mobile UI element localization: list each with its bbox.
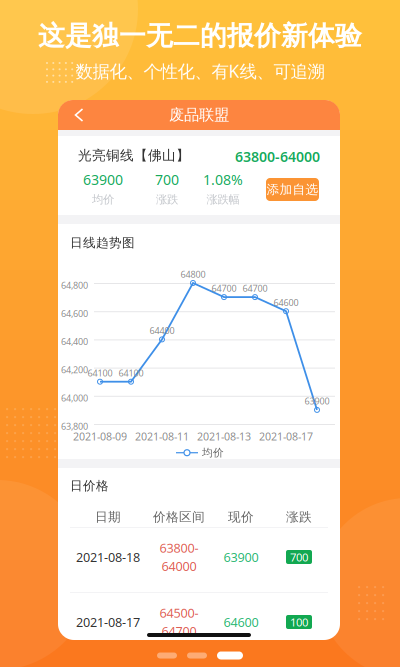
staticText: 63900 [83, 170, 123, 189]
staticText: 64,000 [61, 392, 88, 404]
staticText: 1.08% [203, 170, 243, 189]
staticText: 日线趋势图 [70, 235, 135, 251]
staticText: 64500- [159, 604, 198, 621]
staticText: 2021-08-17 [76, 613, 140, 631]
staticText: 2021-08-13 [197, 429, 251, 443]
staticText: 100 [290, 614, 308, 630]
staticText: 64000 [161, 557, 196, 575]
staticText: 64400 [149, 324, 174, 337]
button[interactable]: 添加自选 [266, 178, 319, 201]
staticText: 63800- [159, 539, 198, 556]
staticText: 64800 [180, 268, 205, 280]
staticText: 均价 [202, 446, 224, 459]
staticText: 63,800 [61, 420, 88, 432]
staticText: 2021-08-17 [259, 429, 313, 443]
staticText: 64700 [211, 282, 236, 294]
staticText: 700 [155, 170, 179, 189]
staticText: 64700 [161, 622, 196, 640]
staticText: 2021-08-09 [73, 429, 127, 443]
staticText: 2021-08-11 [135, 429, 189, 443]
staticText: 64600 [223, 613, 258, 631]
staticText: 64,400 [61, 335, 88, 348]
staticText: 数据化、个性化、有K线、可追溯 [75, 59, 324, 83]
staticText: 63900 [223, 548, 258, 566]
staticText: 日期 [95, 509, 121, 525]
staticText: 64600 [273, 296, 298, 308]
staticText: 添加自选 [266, 181, 318, 197]
staticText: 这是独一无二的报价新体验 [38, 19, 362, 53]
staticText: 光亮铜线【佛山】 [78, 147, 190, 164]
staticText: 2021-08-18 [76, 548, 140, 566]
staticText: 涨跌 [156, 192, 178, 206]
staticText: 涨跌幅 [206, 192, 239, 206]
staticText: 废品联盟 [169, 105, 229, 125]
staticText: 63900 [304, 395, 329, 407]
staticText: 700 [290, 549, 308, 565]
staticText: 日价格 [70, 478, 109, 494]
staticText: 均价 [92, 192, 114, 206]
staticText: 64100 [118, 367, 143, 379]
staticText: 64,800 [61, 279, 88, 291]
staticText: 64100 [87, 367, 112, 379]
staticText: 63800-64000 [235, 147, 320, 166]
button[interactable]: Back [66, 102, 92, 128]
staticText: 现价 [228, 509, 254, 525]
staticText: 64,600 [61, 307, 88, 319]
staticText: 价格区间 [153, 509, 205, 525]
staticText: 涨跌 [286, 509, 312, 525]
staticText: 64,200 [61, 364, 88, 376]
staticText: 64700 [242, 282, 267, 294]
